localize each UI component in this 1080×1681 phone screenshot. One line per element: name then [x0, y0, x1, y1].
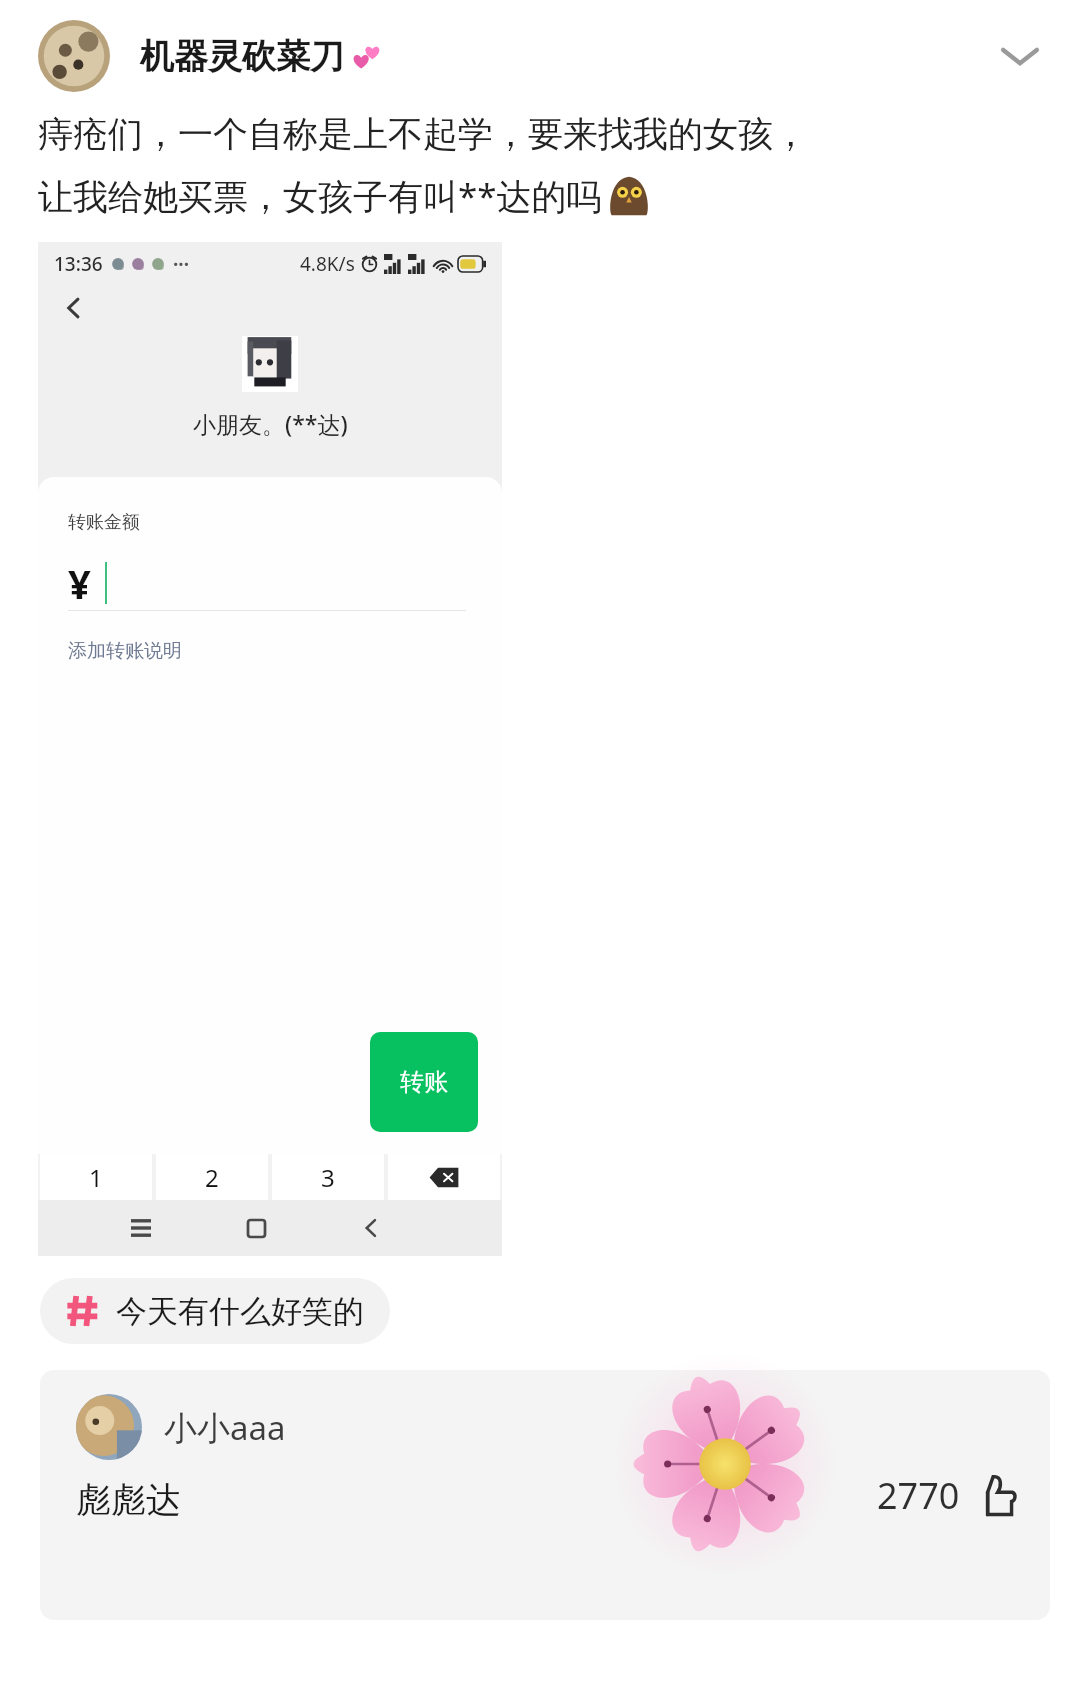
button[interactable]: 今天有什么好笑的: [40, 1278, 390, 1344]
button[interactable]: Back: [52, 286, 96, 330]
button[interactable]: Collapse: [988, 24, 1052, 88]
staticText: 彪彪达: [76, 1478, 181, 1522]
staticText: 2: [205, 1161, 219, 1194]
staticText: 小小aaa: [164, 1405, 286, 1450]
staticText: ¥: [68, 556, 91, 610]
staticText: 转账金额: [68, 511, 140, 534]
staticText: 13:36: [54, 251, 103, 277]
button[interactable]: Home: [235, 1207, 277, 1249]
button[interactable]: 添加转账说明: [38, 637, 192, 665]
button[interactable]: 13:36: [38, 242, 502, 1256]
staticText: 3: [321, 1161, 335, 1194]
button[interactable]: 3: [272, 1154, 384, 1200]
staticText: 痔疮们，一个自称是上不起学，要来找我的女孩，: [38, 112, 808, 156]
button[interactable]: Backspace: [388, 1154, 500, 1200]
staticText: 添加转账说明: [68, 639, 182, 663]
button[interactable]: 2770: [877, 1471, 1018, 1520]
staticText: 转账: [400, 1067, 448, 1097]
button[interactable]: 1: [40, 1154, 152, 1200]
button[interactable]: 转账: [370, 1032, 478, 1132]
button[interactable]: Back: [350, 1207, 392, 1249]
staticText: ···: [173, 251, 190, 277]
staticText: 2770: [877, 1471, 960, 1520]
staticText: 今天有什么好笑的: [116, 1292, 364, 1331]
staticText: 1: [89, 1161, 103, 1194]
staticText: 机器灵砍菜刀: [140, 35, 344, 78]
button[interactable]: 机器灵砍菜刀: [0, 0, 1080, 112]
staticText: 4.8K/s: [300, 251, 355, 277]
other: Like: [972, 1473, 1018, 1519]
button[interactable]: 2: [156, 1154, 268, 1200]
staticText: 让我给她买票，女孩子有叫**达的吗: [38, 172, 602, 220]
button[interactable]: Recents: [120, 1207, 162, 1249]
button[interactable]: 小小aaa: [40, 1370, 1050, 1620]
staticText: 小朋友。(**达): [193, 408, 348, 439]
